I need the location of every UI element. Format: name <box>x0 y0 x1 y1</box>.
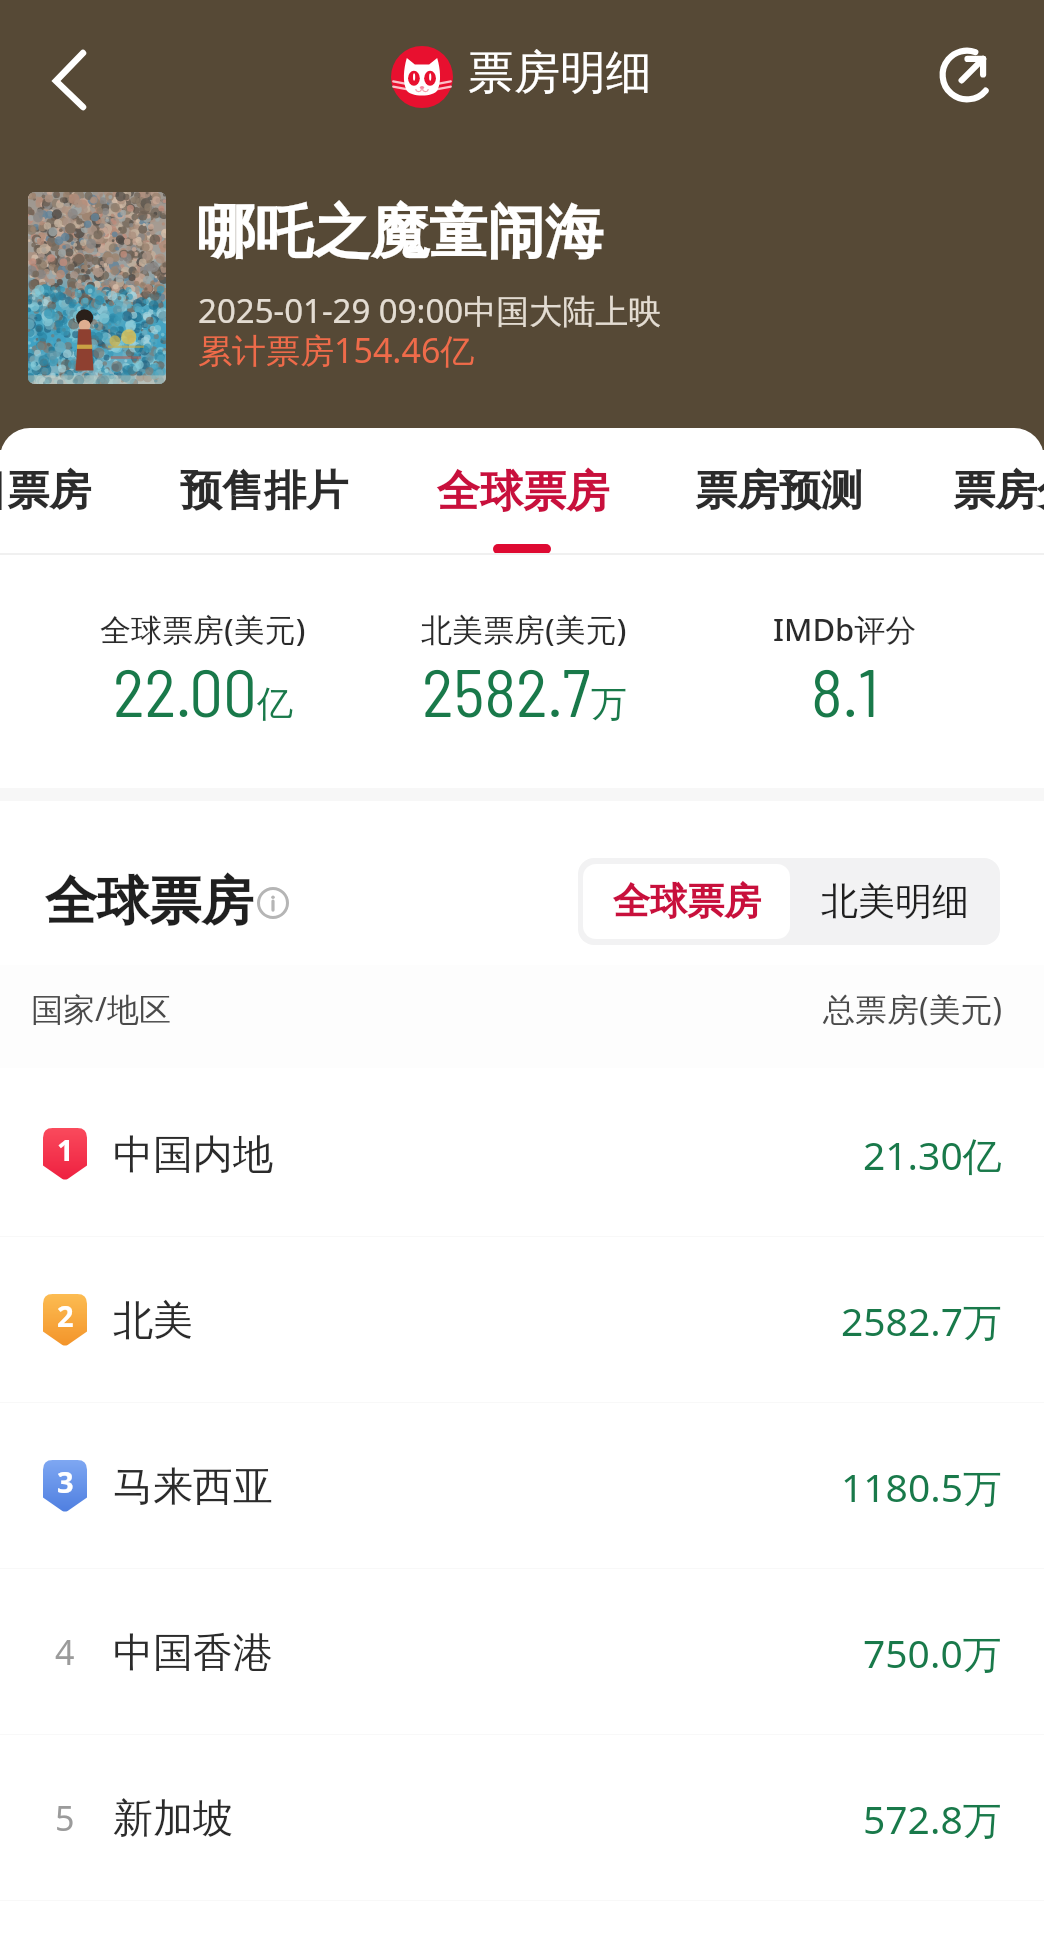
staticText: 票房分析 <box>953 465 1044 518</box>
button[interactable]: 预售排片 <box>180 428 348 553</box>
staticText: 总票房(美元) <box>823 987 1003 1031</box>
button[interactable]: 全球票房 <box>583 864 790 939</box>
staticText: 票房明细 <box>468 44 652 102</box>
staticText: 2 <box>57 1296 74 1335</box>
staticText: 4 <box>55 1629 75 1675</box>
button[interactable]: 4 <box>0 1569 1044 1735</box>
button[interactable]: 2 <box>0 1237 1044 1403</box>
staticText: 马来西亚 <box>113 1461 273 1511</box>
button[interactable]: 票房分析 <box>953 428 1044 553</box>
staticText: 1 <box>57 1130 74 1169</box>
staticText: 全球票房 <box>437 465 609 519</box>
button[interactable]: More information <box>253 883 293 923</box>
staticText: IMDb评分 <box>773 608 917 650</box>
staticText: 2025-01-29 09:00中国大陆上映 <box>198 288 662 333</box>
staticText: 预售排片 <box>180 465 348 518</box>
staticText: 750.0万 <box>863 1626 1002 1679</box>
staticText: 北美明细 <box>821 878 969 925</box>
staticText: 北美票房(美元) <box>421 608 627 650</box>
staticText: 中国内地 <box>113 1129 273 1179</box>
staticText: 2582.7 <box>422 650 591 730</box>
button[interactable]: 全球票房 <box>437 428 609 553</box>
button[interactable]: 5 <box>0 1735 1044 1901</box>
staticText: 3 <box>57 1462 74 1501</box>
staticText: 全球票房(美元) <box>100 608 306 650</box>
button[interactable]: 首日票房 <box>0 428 91 553</box>
staticText: 中国香港 <box>113 1627 273 1677</box>
staticText: 572.8万 <box>863 1792 1002 1845</box>
button[interactable]: Share <box>932 40 1002 110</box>
staticText: 21.30亿 <box>863 1128 1002 1181</box>
staticText: 国家/地区 <box>31 987 171 1031</box>
staticText: 全球票房 <box>613 878 761 925</box>
staticText: 1180.5万 <box>841 1460 1002 1513</box>
button[interactable]: Back <box>28 32 112 116</box>
staticText: 累计票房154.46亿 <box>198 327 475 373</box>
staticText: 万 <box>591 681 627 726</box>
button[interactable]: 3 <box>0 1403 1044 1569</box>
staticText: 2582.7万 <box>841 1294 1002 1347</box>
staticText: 亿 <box>257 681 293 726</box>
staticText: 北美 <box>113 1295 193 1345</box>
staticText: 22.00 <box>113 650 257 730</box>
button[interactable]: 哪吒之魔童闹海 <box>24 186 724 390</box>
staticText: 全球票房 <box>45 869 253 935</box>
staticText: 新加坡 <box>113 1793 233 1843</box>
staticText: 首日票房 <box>0 465 91 518</box>
staticText: 8.1 <box>811 650 879 730</box>
button[interactable]: 1 <box>0 1071 1044 1237</box>
staticText: 5 <box>55 1795 75 1841</box>
staticText: 票房预测 <box>695 465 863 518</box>
staticText: 哪吒之魔童闹海 <box>197 196 603 269</box>
button[interactable]: 票房预测 <box>695 428 863 553</box>
button[interactable]: 北美明细 <box>790 858 1000 945</box>
